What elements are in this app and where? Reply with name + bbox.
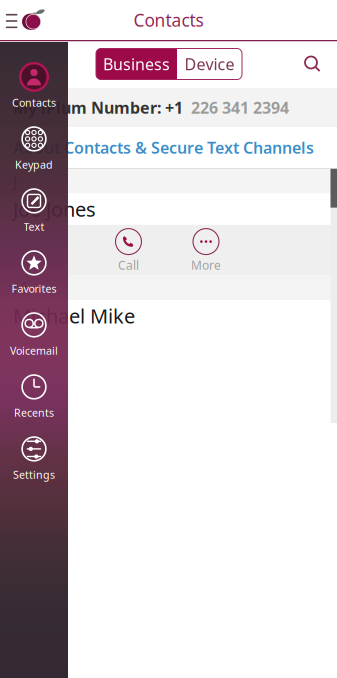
button[interactable]: Keypad	[0, 116, 68, 178]
button[interactable]: Business	[96, 48, 177, 79]
staticText: Favorites	[11, 281, 56, 296]
staticText: Text	[23, 219, 44, 234]
button[interactable]: Michael	[0, 300, 337, 331]
button[interactable]: Search	[297, 48, 329, 80]
staticText: More	[191, 257, 221, 273]
button[interactable]: Device	[177, 48, 242, 79]
staticText: Device	[184, 53, 234, 75]
staticText: Keypad	[15, 157, 53, 172]
staticText: M	[13, 277, 28, 298]
staticText: Contacts	[12, 95, 56, 110]
button[interactable]: Settings	[0, 426, 68, 488]
staticText: Joe	[13, 196, 46, 222]
staticText: Business	[103, 53, 170, 75]
button[interactable]: Recents	[0, 364, 68, 426]
staticText: Settings	[13, 467, 55, 482]
button[interactable]: Menu	[0, 0, 52, 40]
button[interactable]: Call	[102, 229, 154, 273]
button[interactable]: Contacts	[0, 54, 68, 116]
staticText: Call	[118, 257, 139, 273]
button[interactable]: Favorites	[0, 240, 68, 302]
button[interactable]: More	[180, 229, 232, 273]
staticText: 226 341 2394	[183, 97, 289, 118]
staticText: About Contacts & Secure Text Channels	[13, 137, 314, 158]
button[interactable]: Voicemail	[0, 302, 68, 364]
staticText: My iPlum Number: +1	[13, 97, 183, 118]
staticText: Recents	[14, 405, 54, 420]
button[interactable]: Text	[0, 178, 68, 240]
button[interactable]: Joe	[0, 193, 337, 225]
staticText: Voicemail	[10, 343, 58, 358]
staticText: Contacts	[133, 8, 203, 31]
staticText: Jones	[46, 196, 96, 222]
staticText: Michael	[13, 302, 90, 329]
button[interactable]: About Contacts & Secure Text Channels	[0, 127, 337, 168]
staticText: Mike	[90, 302, 135, 329]
